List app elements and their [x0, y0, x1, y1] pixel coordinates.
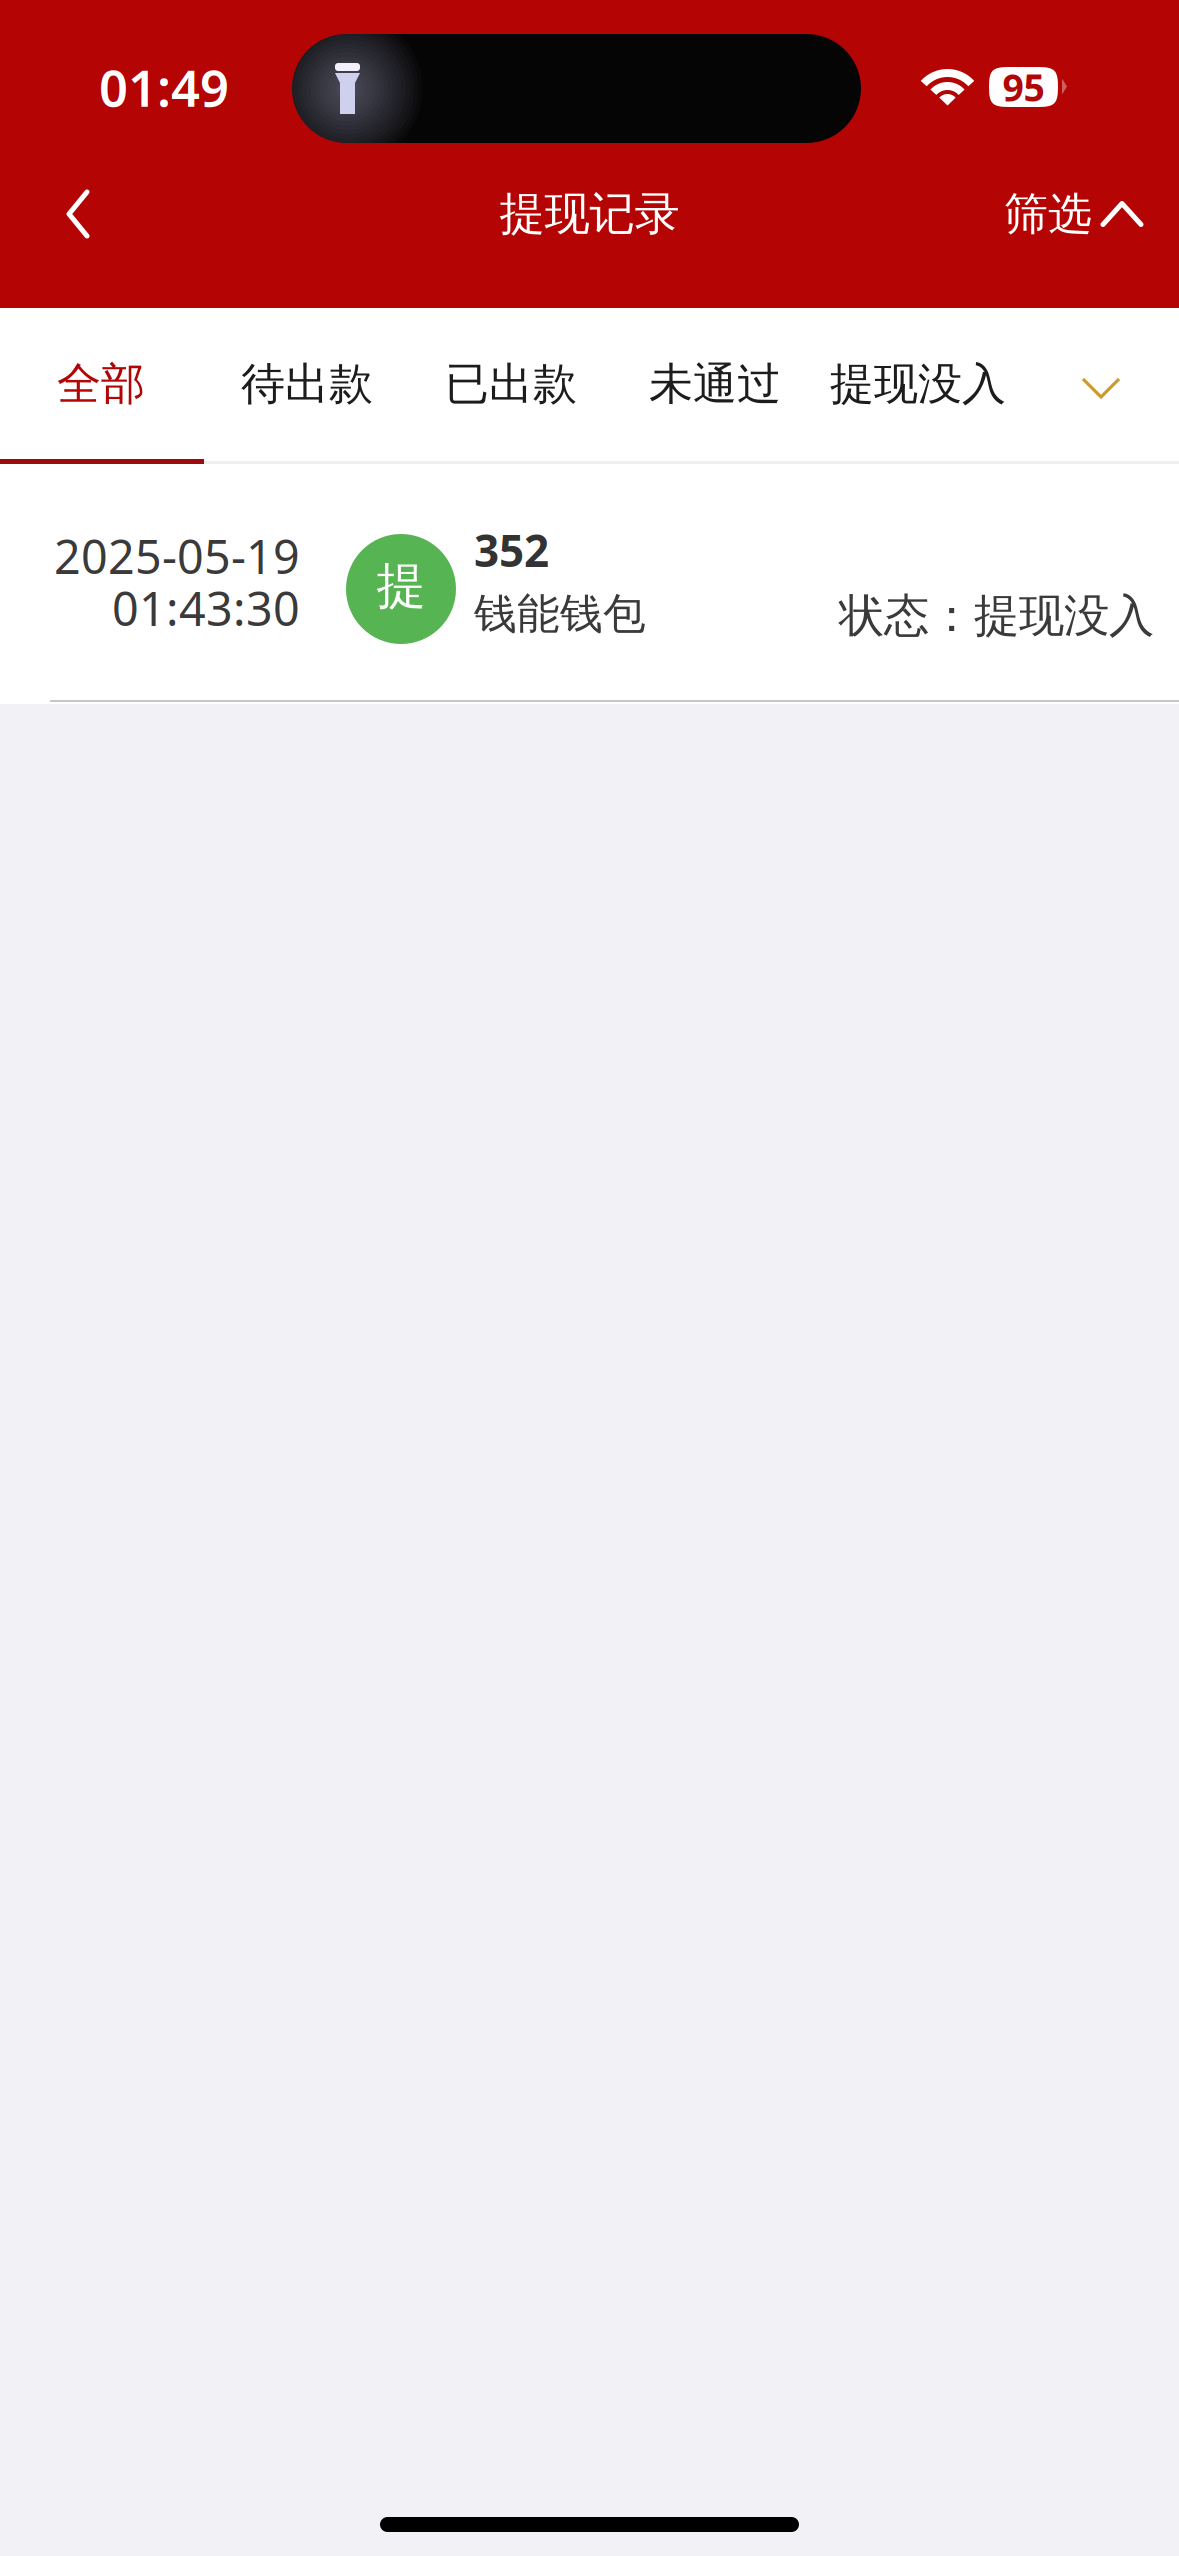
staticText: 未通过 — [649, 357, 781, 411]
staticText: 提 — [376, 556, 425, 616]
staticText: 01:49 — [99, 53, 229, 121]
staticText: 钱能钱包 — [474, 588, 646, 640]
staticText: 提现没入 — [830, 357, 1006, 411]
button[interactable]: 全部 — [1, 308, 201, 460]
staticText: 提现记录 — [499, 186, 679, 242]
staticText: 全部 — [57, 357, 145, 411]
staticText: 95 — [1002, 62, 1044, 112]
button[interactable]: 未通过 — [615, 308, 815, 460]
button[interactable]: 待出款 — [207, 308, 407, 460]
staticText: 2025-05-19 — [54, 525, 300, 587]
staticText: 待出款 — [241, 357, 373, 411]
staticText: 01:43:30 — [112, 577, 300, 639]
button[interactable]: 提现没入 — [818, 308, 1018, 460]
staticText: 状态：提现没入 — [839, 588, 1154, 644]
button[interactable]: 已出款 — [411, 308, 611, 460]
button[interactable]: 2025-05-19 — [0, 466, 1179, 704]
button[interactable]: More filters — [1046, 312, 1156, 464]
button[interactable]: 筛选 — [959, 169, 1179, 259]
button[interactable]: Back — [23, 159, 133, 269]
staticText: 352 — [474, 521, 549, 579]
staticText: 筛选 — [1004, 187, 1092, 241]
staticText: 已出款 — [445, 357, 577, 411]
